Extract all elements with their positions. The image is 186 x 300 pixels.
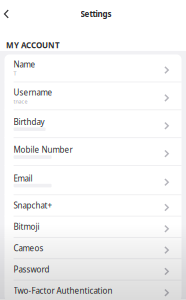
button[interactable]: Cameos <box>4 238 181 258</box>
button[interactable]: Bitmoji <box>4 216 181 237</box>
staticText: Birthday <box>14 117 45 127</box>
button[interactable]: Name <box>4 54 181 82</box>
button[interactable]: Two-Factor Authentication <box>4 280 181 300</box>
button[interactable]: Email <box>4 166 181 194</box>
button[interactable]: Mobile Number <box>4 138 181 165</box>
staticText: Two-Factor Authentication <box>14 285 113 296</box>
staticText: Password <box>14 264 50 275</box>
staticText: tnace <box>14 98 28 105</box>
staticText: Mobile Number <box>14 144 73 155</box>
staticText: Settings <box>80 9 111 19</box>
staticText: Name <box>14 59 36 70</box>
button[interactable]: Password <box>4 259 181 280</box>
staticText: Bitmoji <box>14 221 40 232</box>
staticText: T <box>14 70 17 77</box>
button[interactable]: Snapchat+ <box>4 195 181 216</box>
staticText: Username <box>14 87 53 98</box>
staticText: MY ACCOUNT <box>6 40 60 50</box>
button[interactable]: Username <box>4 82 181 109</box>
staticText: Snapchat+ <box>14 200 53 211</box>
staticText: Email <box>14 173 33 184</box>
staticText: Cameos <box>14 243 44 253</box>
button[interactable]: Birthday <box>4 110 181 137</box>
button[interactable]: Back <box>0 6 15 22</box>
